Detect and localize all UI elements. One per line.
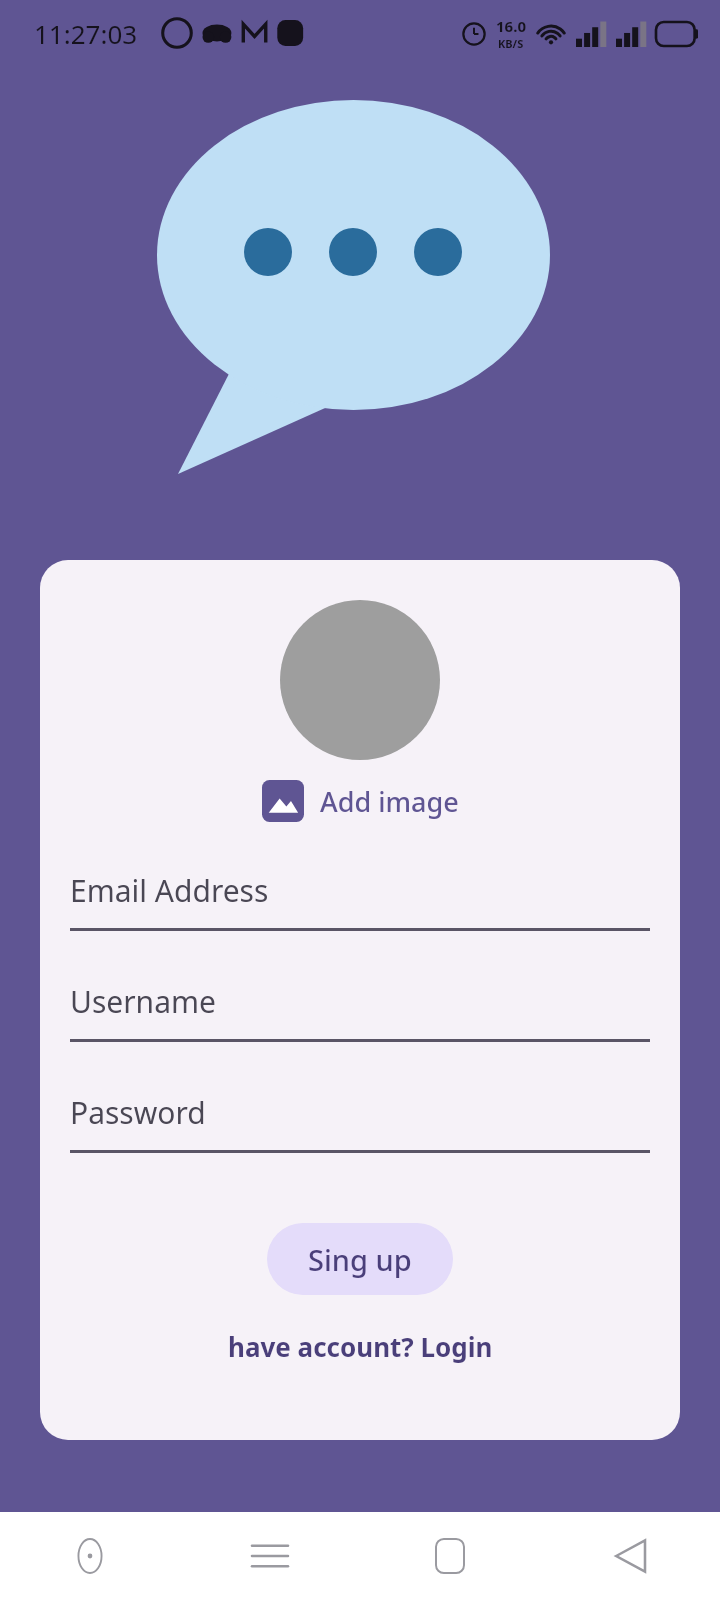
staticText: KB/S: [498, 36, 524, 51]
staticText: Email Address: [70, 870, 269, 911]
staticText: have account? Login: [228, 1329, 493, 1364]
staticText: 11:27:03: [34, 16, 138, 51]
button[interactable]: Email Address: [70, 852, 650, 963]
staticText: Add image: [320, 783, 459, 820]
button[interactable]: have account? Login: [218, 1323, 503, 1370]
button[interactable]: Profile photo: [280, 600, 440, 760]
button[interactable]: Home: [360, 1512, 540, 1600]
staticText: Sing up: [308, 1240, 412, 1279]
button[interactable]: Username: [70, 963, 650, 1074]
button[interactable]: Add image: [256, 774, 465, 828]
staticText: Password: [70, 1092, 206, 1133]
button[interactable]: Back: [540, 1512, 720, 1600]
staticText: Username: [70, 981, 216, 1022]
button[interactable]: Sing up: [267, 1223, 453, 1295]
button[interactable]: Recent apps: [180, 1512, 360, 1600]
button[interactable]: Assistant: [0, 1512, 180, 1600]
button[interactable]: Password: [70, 1074, 650, 1185]
staticText: 16.0: [496, 16, 526, 36]
